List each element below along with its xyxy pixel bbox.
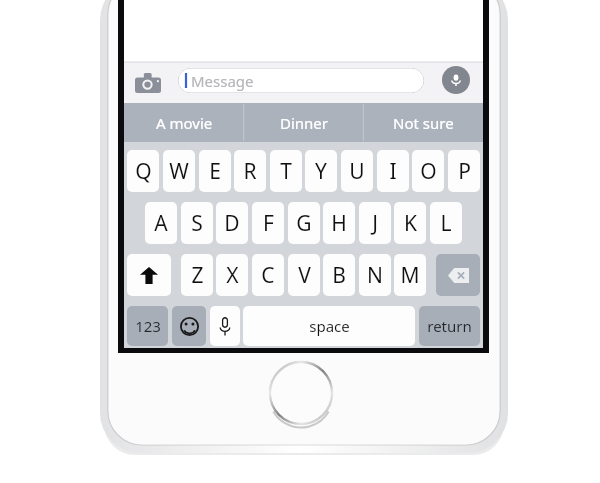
button[interactable]: Backspace bbox=[436, 254, 480, 296]
staticText: W bbox=[169, 157, 189, 186]
staticText: F bbox=[263, 209, 274, 238]
button[interactable]: Dictate bbox=[210, 306, 240, 346]
staticText: O bbox=[420, 157, 437, 186]
staticText: Q bbox=[135, 157, 152, 186]
button[interactable]: Message bbox=[178, 68, 424, 93]
button[interactable]: C bbox=[252, 254, 284, 296]
button[interactable]: I bbox=[377, 150, 409, 192]
staticText: R bbox=[243, 157, 257, 186]
button[interactable]: A movie bbox=[124, 103, 244, 142]
button[interactable]: Camera bbox=[131, 66, 165, 99]
staticText: 123 bbox=[135, 316, 161, 336]
staticText: L bbox=[440, 209, 452, 238]
button[interactable]: E bbox=[199, 150, 231, 192]
button[interactable]: Z bbox=[181, 254, 213, 296]
staticText: J bbox=[372, 209, 378, 238]
button[interactable]: S bbox=[181, 202, 213, 244]
staticText: G bbox=[296, 209, 312, 238]
staticText: H bbox=[331, 209, 347, 238]
button[interactable]: Q bbox=[127, 150, 159, 192]
button[interactable]: Not sure bbox=[363, 103, 483, 142]
staticText: T bbox=[280, 157, 292, 186]
staticText: Y bbox=[315, 157, 327, 186]
staticText: E bbox=[209, 157, 221, 186]
button[interactable]: space bbox=[243, 306, 415, 346]
button[interactable]: 123 bbox=[127, 306, 168, 346]
staticText: P bbox=[458, 157, 471, 186]
button[interactable]: H bbox=[323, 202, 355, 244]
staticText: M bbox=[400, 261, 420, 290]
button[interactable]: G bbox=[288, 202, 320, 244]
button[interactable]: F bbox=[252, 202, 284, 244]
button[interactable]: return bbox=[419, 306, 480, 346]
button[interactable]: B bbox=[323, 254, 355, 296]
button[interactable]: V bbox=[288, 254, 320, 296]
button[interactable]: O bbox=[412, 150, 444, 192]
button[interactable]: A bbox=[145, 202, 177, 244]
staticText: C bbox=[261, 261, 275, 290]
staticText: S bbox=[191, 209, 203, 238]
button[interactable]: Shift bbox=[127, 254, 171, 296]
staticText: N bbox=[367, 261, 383, 290]
button[interactable]: P bbox=[448, 150, 480, 192]
button[interactable]: R bbox=[234, 150, 266, 192]
button[interactable]: T bbox=[270, 150, 302, 192]
staticText: Not sure bbox=[393, 113, 454, 133]
staticText: B bbox=[332, 261, 346, 290]
button[interactable]: Y bbox=[305, 150, 337, 192]
staticText: A movie bbox=[156, 113, 213, 133]
button[interactable]: D bbox=[216, 202, 248, 244]
button[interactable]: M bbox=[394, 254, 426, 296]
button[interactable]: L bbox=[430, 202, 462, 244]
button[interactable]: U bbox=[341, 150, 373, 192]
staticText: X bbox=[226, 261, 239, 290]
staticText: A bbox=[154, 209, 168, 238]
button[interactable]: Voice message bbox=[442, 66, 470, 94]
staticText: D bbox=[224, 209, 240, 238]
button[interactable]: W bbox=[163, 150, 195, 192]
button[interactable]: N bbox=[359, 254, 391, 296]
staticText: space bbox=[309, 316, 350, 336]
button[interactable]: K bbox=[394, 202, 426, 244]
staticText: V bbox=[298, 261, 311, 290]
button[interactable]: J bbox=[359, 202, 391, 244]
staticText: Dinner bbox=[280, 113, 329, 133]
staticText: I bbox=[389, 157, 397, 186]
staticText: Z bbox=[191, 261, 204, 290]
button[interactable]: X bbox=[216, 254, 248, 296]
staticText: return bbox=[427, 316, 472, 336]
staticText: U bbox=[349, 157, 365, 186]
button[interactable]: Dinner bbox=[244, 103, 364, 142]
staticText: K bbox=[404, 209, 417, 238]
staticText: Message bbox=[191, 71, 254, 91]
button[interactable]: Emoji bbox=[172, 306, 206, 346]
